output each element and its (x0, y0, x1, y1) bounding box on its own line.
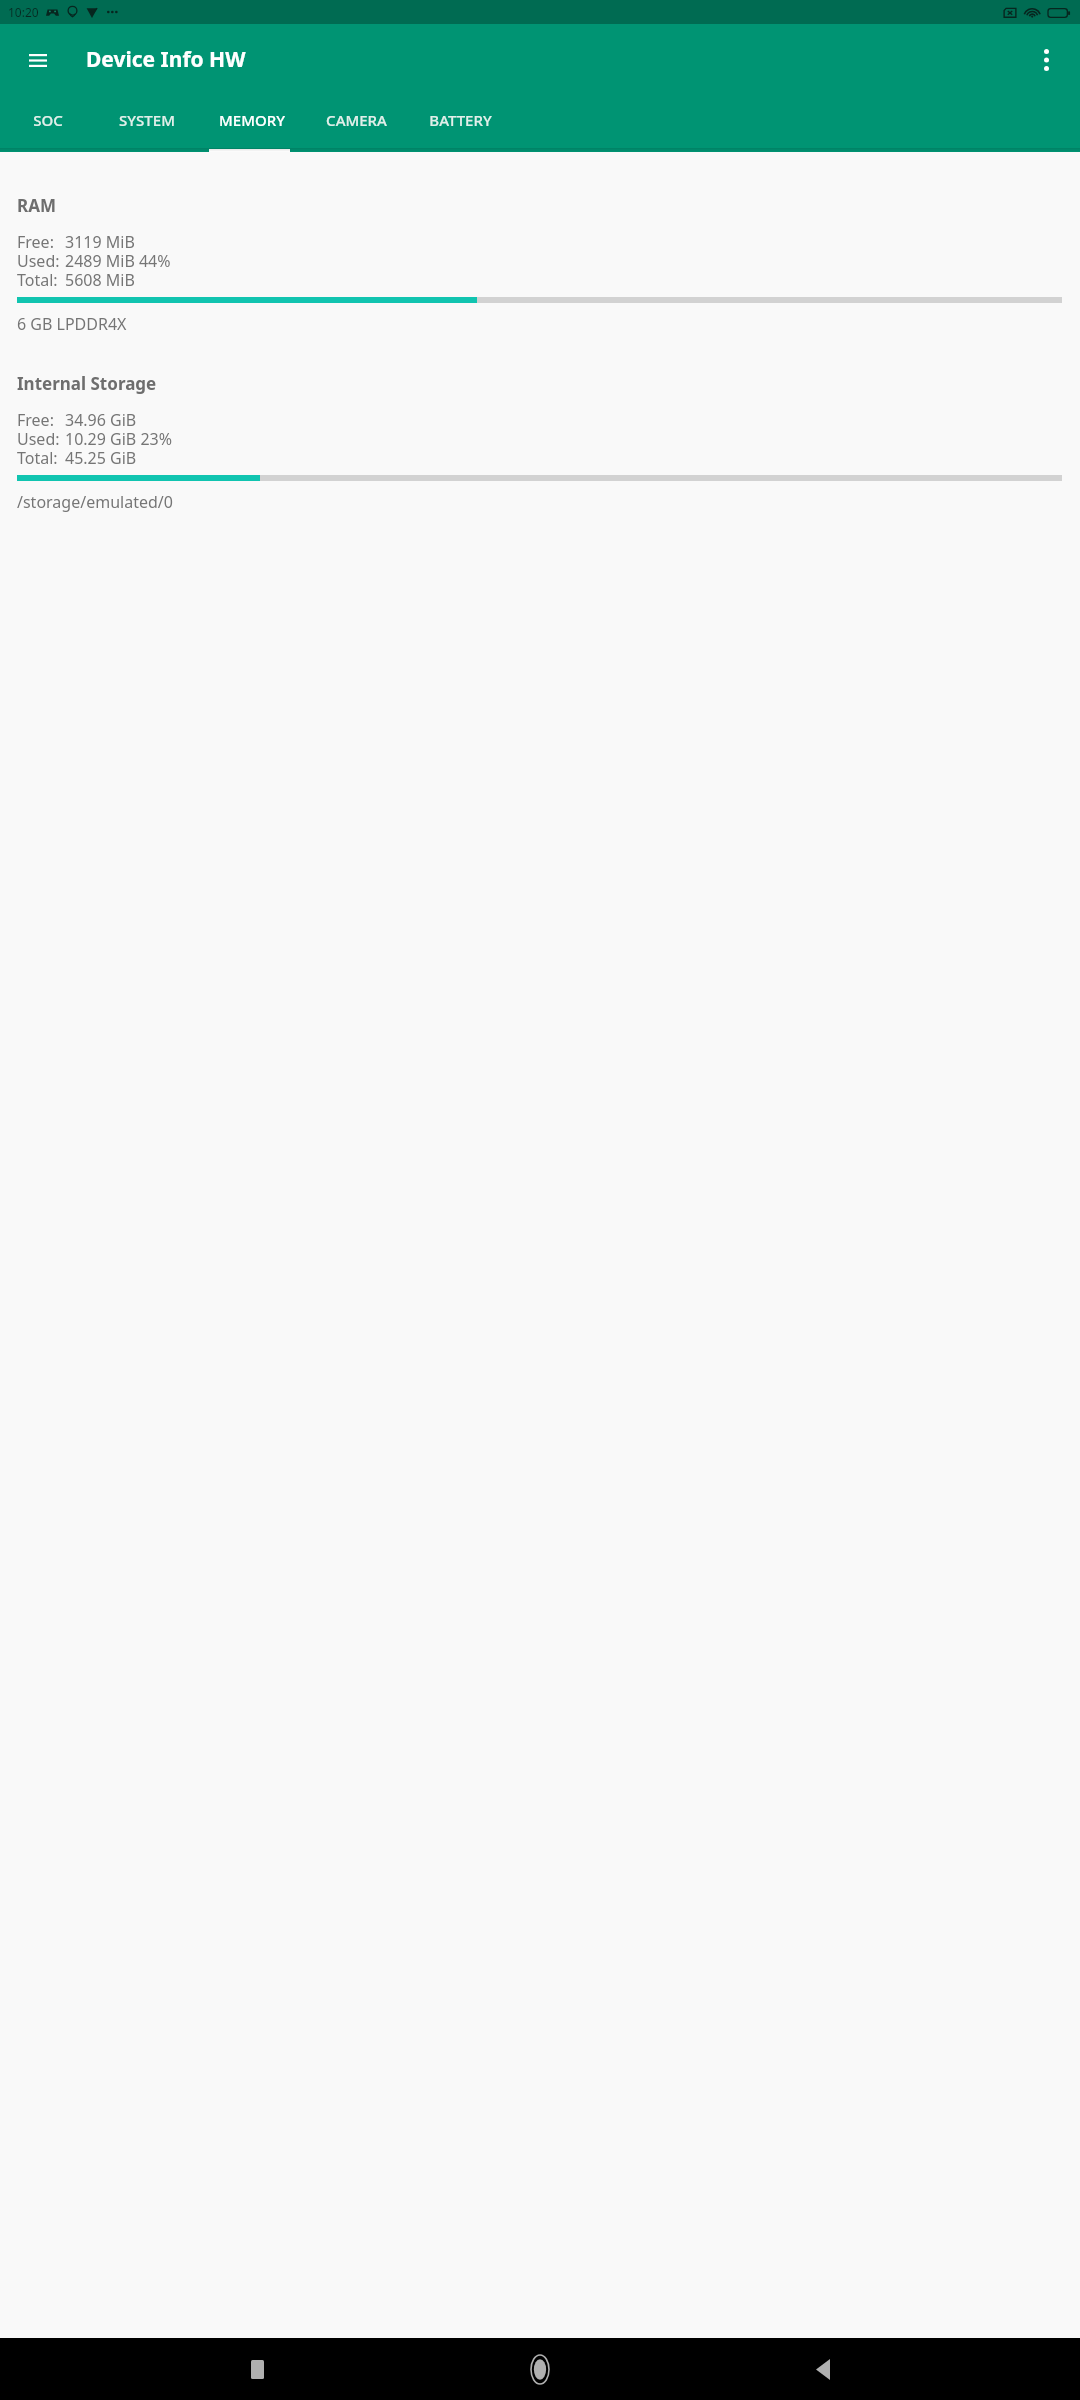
staticText: Total: (17, 269, 58, 288)
staticText: Internal Storage (17, 372, 157, 395)
button[interactable]: Back (797, 2343, 849, 2395)
staticText: /storage/emulated/0 (17, 491, 173, 513)
staticText: Free: (17, 231, 54, 250)
staticText: 10.29 GiB 23% (65, 428, 172, 447)
staticText: Used: (17, 428, 60, 447)
staticText: BATTERY (429, 110, 492, 130)
staticText: RAM (17, 194, 56, 217)
staticText: CAMERA (326, 110, 387, 130)
staticText: MEMORY (219, 110, 285, 130)
staticText: Device Info HW (86, 45, 246, 74)
button[interactable]: Recent apps (231, 2343, 283, 2395)
staticText: 6 GB LPDDR4X (17, 313, 127, 335)
button[interactable]: BATTERY (408, 96, 512, 152)
button[interactable]: SYSTEM (95, 96, 199, 152)
button[interactable]: Home (514, 2343, 566, 2395)
staticText: 45.25 GiB (65, 447, 137, 466)
button[interactable]: MEMORY (199, 96, 305, 152)
button[interactable]: More options (1022, 36, 1070, 84)
staticText: 5608 MiB (65, 269, 135, 288)
staticText: 2489 MiB 44% (65, 250, 171, 269)
staticText: Free: (17, 409, 54, 428)
staticText: 3119 MiB (65, 231, 135, 250)
staticText: SYSTEM (119, 110, 175, 130)
staticText: Total: (17, 447, 58, 466)
staticText: 34.96 GiB (65, 409, 137, 428)
staticText: SOC (33, 110, 63, 130)
button[interactable]: Open navigation menu (14, 36, 62, 84)
staticText: Used: (17, 250, 60, 269)
button[interactable]: SOC (0, 96, 95, 152)
staticText: 10:20 (8, 4, 39, 20)
button[interactable]: CAMERA (305, 96, 408, 152)
